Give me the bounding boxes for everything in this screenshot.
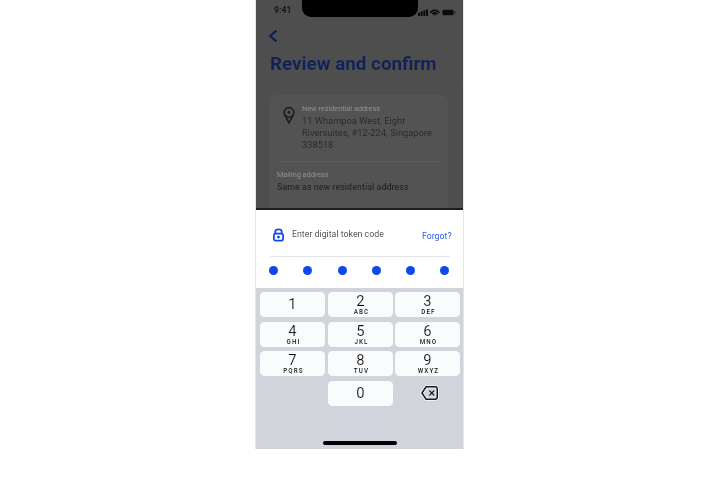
staticText: 4 xyxy=(260,322,325,339)
button[interactable]: Back xyxy=(260,24,286,48)
staticText: ABC xyxy=(329,308,393,315)
staticText: 1 xyxy=(260,295,325,312)
button[interactable]: 4 xyxy=(260,322,325,347)
button[interactable]: 8 xyxy=(328,351,393,376)
button[interactable]: Forgot? xyxy=(410,225,452,247)
staticText: 7 xyxy=(260,351,325,368)
staticText: 9:41 xyxy=(274,5,292,15)
staticText: 2 xyxy=(328,292,393,309)
staticText: 9 xyxy=(395,351,460,368)
staticText: 5 xyxy=(328,322,393,339)
staticText: 11 Whampoa West, Eight Riversuites, #12-… xyxy=(302,115,432,150)
staticText: 6 xyxy=(395,322,460,339)
staticText: 8 xyxy=(328,351,393,368)
button[interactable]: 2 xyxy=(328,292,393,317)
staticText: 3 xyxy=(395,292,460,309)
staticText: JKL xyxy=(329,338,393,345)
staticText: New residential address xyxy=(302,104,380,113)
button[interactable]: 6 xyxy=(395,322,460,347)
button[interactable]: 1 xyxy=(260,292,325,317)
staticText: Mailing address xyxy=(277,170,329,179)
button[interactable]: New residential address xyxy=(269,95,448,220)
staticText: DEF xyxy=(396,308,460,315)
button[interactable]: 5 xyxy=(328,322,393,347)
button[interactable]: 9 xyxy=(395,351,460,376)
button[interactable]: Backspace xyxy=(410,379,448,407)
staticText: WXYZ xyxy=(396,367,460,374)
staticText: Enter digital token code xyxy=(292,229,384,239)
staticText: TUV xyxy=(329,367,393,374)
button[interactable]: 7 xyxy=(260,351,325,376)
staticText: 0 xyxy=(328,384,393,401)
button[interactable]: 0 xyxy=(328,381,393,406)
staticText: GHI xyxy=(261,338,325,345)
staticText: Forgot? xyxy=(422,231,452,241)
staticText: Review and confirm xyxy=(270,53,437,75)
button[interactable]: 3 xyxy=(395,292,460,317)
staticText: Same as new residential address xyxy=(277,182,409,192)
staticText: MNO xyxy=(396,338,460,345)
staticText: PQRS xyxy=(261,367,325,374)
